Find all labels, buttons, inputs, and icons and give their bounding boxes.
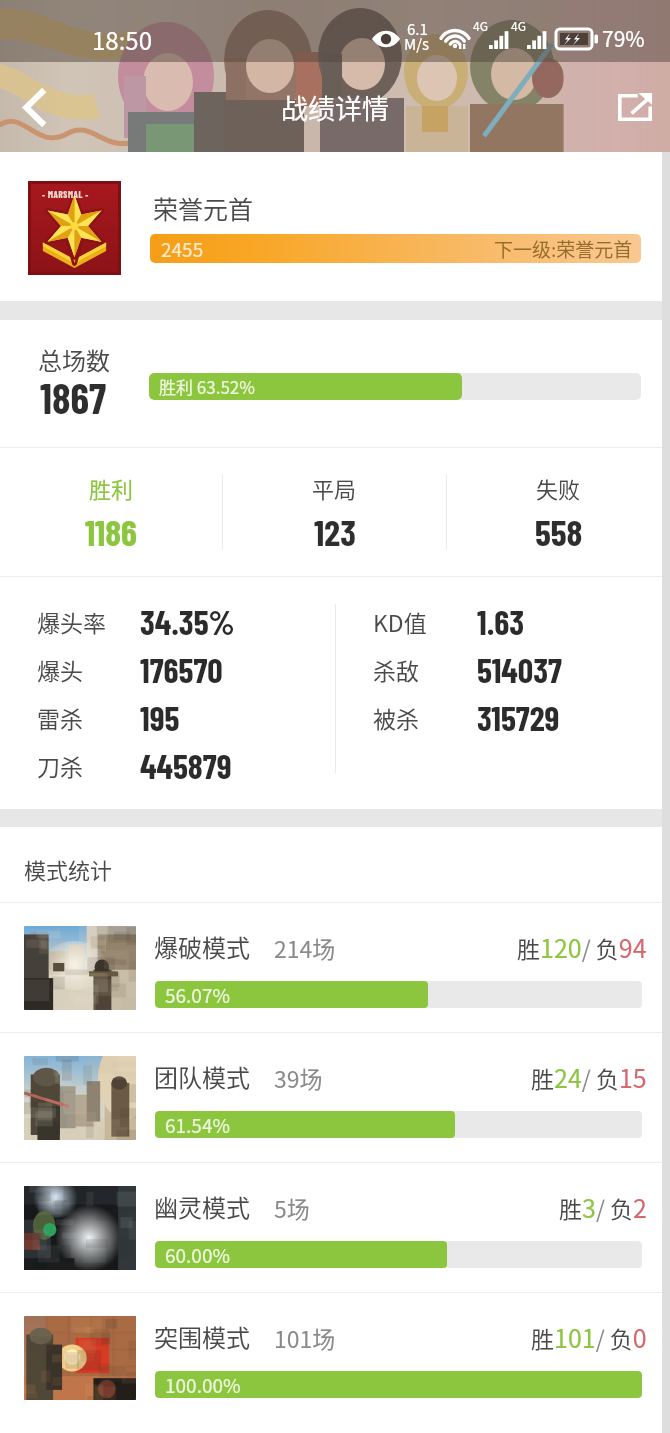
staticText: 315729 bbox=[477, 697, 560, 738]
staticText: 平局 bbox=[312, 472, 357, 504]
staticText: 1867 bbox=[40, 372, 106, 422]
button[interactable]: 团队模式 bbox=[0, 1033, 670, 1162]
staticText: 刀杀 bbox=[37, 749, 83, 782]
staticText: 幽灵模式 bbox=[154, 1189, 250, 1224]
staticText: 5场 bbox=[274, 1191, 310, 1224]
staticText: 56.07% bbox=[165, 981, 230, 1008]
button[interactable]: 突围模式 bbox=[0, 1293, 670, 1422]
staticText: 失败 bbox=[536, 472, 581, 504]
staticText: 61.54% bbox=[165, 1111, 230, 1138]
staticText: 杀敌 bbox=[373, 653, 419, 686]
staticText: 胜利 bbox=[89, 472, 134, 504]
staticText: 胜3/ 负2 bbox=[559, 1189, 647, 1225]
staticText: 胜24/ 负15 bbox=[531, 1059, 647, 1095]
staticText: 爆破模式 bbox=[154, 929, 250, 964]
staticText: 下一级:荣誉元首 bbox=[494, 235, 633, 263]
button[interactable]: 爆破模式 bbox=[0, 903, 670, 1032]
staticText: 总场数 bbox=[38, 342, 110, 377]
staticText: 18:50 bbox=[92, 22, 152, 57]
button[interactable]: 平局 bbox=[223, 448, 446, 576]
staticText: 1.63 bbox=[477, 601, 525, 642]
button[interactable]: 胜利 bbox=[0, 448, 222, 576]
staticText: 被杀 bbox=[373, 701, 419, 734]
staticText: 爆头 bbox=[37, 653, 83, 686]
staticText: 79% bbox=[602, 23, 645, 53]
staticText: 176570 bbox=[140, 649, 223, 690]
button[interactable]: Back bbox=[0, 62, 70, 152]
staticText: 34.35% bbox=[140, 601, 235, 642]
staticText: 雷杀 bbox=[37, 701, 83, 734]
staticText: 战绩详情 bbox=[281, 88, 389, 127]
staticText: M/s bbox=[404, 33, 430, 55]
staticText: 514037 bbox=[477, 649, 562, 690]
staticText: 4G bbox=[473, 17, 488, 34]
staticText: 胜120/ 负94 bbox=[517, 929, 647, 965]
staticText: 1186 bbox=[85, 510, 137, 553]
staticText: 团队模式 bbox=[154, 1059, 250, 1094]
staticText: 4G bbox=[511, 17, 526, 34]
staticText: 6.1 bbox=[407, 18, 428, 40]
button[interactable]: 失败 bbox=[447, 448, 670, 576]
staticText: 214场 bbox=[274, 931, 336, 964]
staticText: 445879 bbox=[140, 745, 232, 786]
staticText: 558 bbox=[535, 510, 583, 553]
staticText: KD值 bbox=[373, 605, 427, 638]
staticText: 突围模式 bbox=[154, 1319, 250, 1354]
staticText: 195 bbox=[140, 697, 180, 738]
button[interactable]: Share bbox=[600, 62, 670, 152]
staticText: 60.00% bbox=[165, 1241, 230, 1268]
staticText: 101场 bbox=[274, 1321, 336, 1354]
staticText: - MARSMAL - bbox=[42, 189, 89, 200]
staticText: 胜利 63.52% bbox=[159, 374, 255, 399]
staticText: 胜101/ 负0 bbox=[531, 1319, 647, 1355]
staticText: 2455 bbox=[161, 235, 204, 263]
staticText: 荣誉元首 bbox=[153, 190, 254, 226]
staticText: 爆头率 bbox=[37, 605, 106, 638]
staticText: 39场 bbox=[274, 1061, 323, 1094]
staticText: 123 bbox=[314, 510, 356, 553]
button[interactable]: 幽灵模式 bbox=[0, 1163, 670, 1292]
staticText: 模式统计 bbox=[24, 853, 113, 885]
staticText: 100.00% bbox=[165, 1371, 241, 1398]
